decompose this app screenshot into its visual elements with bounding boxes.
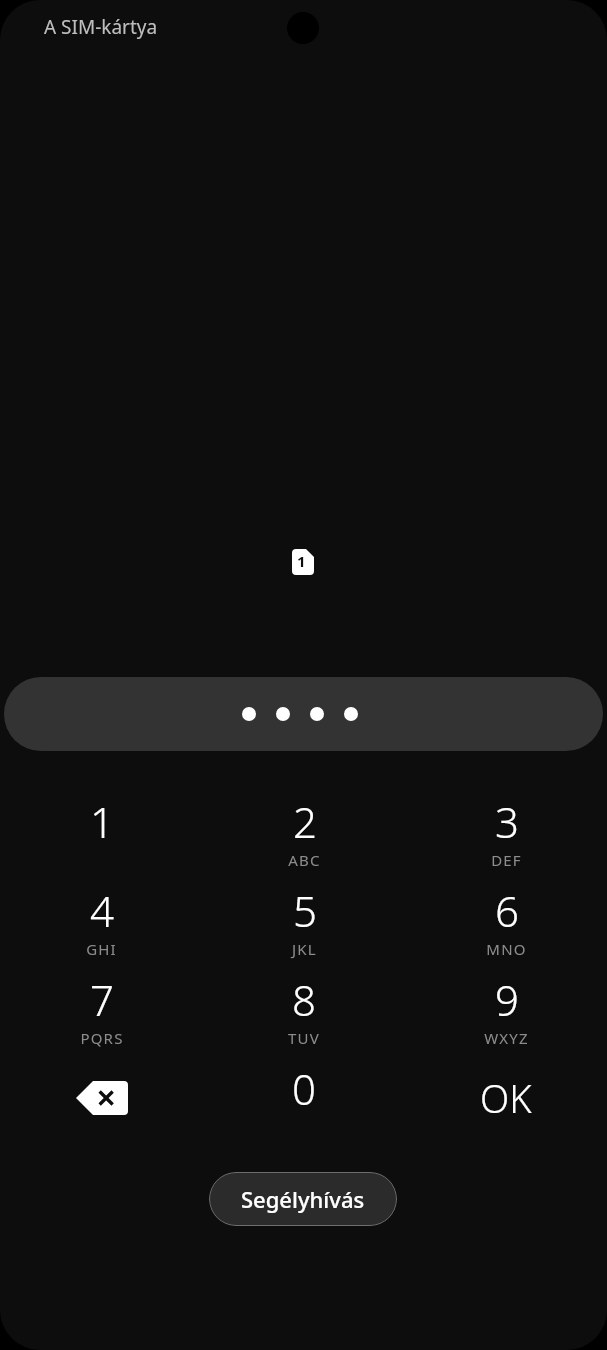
button[interactable]: 2 (203, 793, 405, 878)
staticText: OK (480, 1072, 532, 1124)
button[interactable]: 4 (0, 882, 203, 967)
staticText: 6 (495, 882, 519, 939)
staticText: 1 (90, 793, 114, 850)
staticText: Segélyhívás (241, 1184, 365, 1214)
staticText: JKL (292, 939, 317, 959)
button[interactable]: 1 (0, 793, 203, 878)
button[interactable]: 9 (405, 971, 607, 1056)
staticText: 2 (293, 793, 317, 850)
button[interactable] (4, 677, 603, 751)
staticText: MNO (486, 939, 527, 959)
button[interactable]: Segélyhívás (209, 1172, 397, 1226)
staticText: GHI (86, 939, 117, 959)
button[interactable]: Backspace (0, 1060, 203, 1135)
staticText: PQRS (80, 1028, 124, 1048)
button[interactable]: OK (405, 1060, 607, 1135)
staticText: DEF (491, 850, 522, 870)
staticText: TUV (288, 1028, 320, 1048)
button[interactable]: 8 (203, 971, 405, 1056)
staticText: 5 (293, 882, 317, 939)
staticText: 3 (495, 793, 519, 850)
button[interactable]: 5 (203, 882, 405, 967)
staticText: 7 (90, 971, 114, 1028)
staticText: WXYZ (484, 1028, 529, 1048)
staticText: 0 (292, 1060, 316, 1117)
staticText: 8 (292, 971, 316, 1028)
button[interactable]: 7 (0, 971, 203, 1056)
staticText: 9 (495, 971, 519, 1028)
staticText: 1 (297, 551, 306, 571)
button[interactable]: 3 (405, 793, 607, 878)
staticText: 4 (90, 882, 114, 939)
staticText: ABC (288, 850, 321, 870)
staticText: A SIM-kártya (44, 14, 158, 40)
button[interactable]: 0 (203, 1060, 405, 1135)
button[interactable]: 6 (405, 882, 607, 967)
